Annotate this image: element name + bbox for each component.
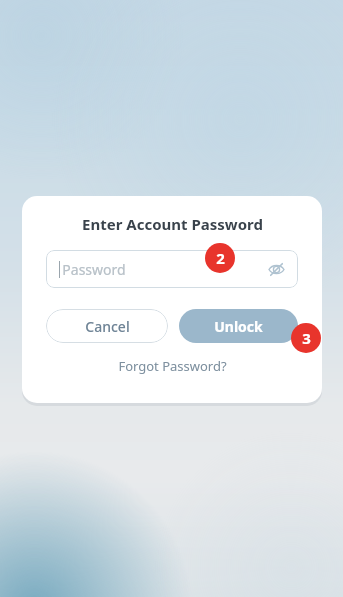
- staticText: 3: [302, 328, 311, 348]
- button[interactable]: Forgot Password?: [112, 355, 233, 377]
- staticText: Unlock: [214, 317, 263, 336]
- staticText: Forgot Password?: [118, 357, 227, 375]
- staticText: 2: [216, 248, 225, 268]
- button[interactable]: Cancel: [46, 309, 168, 343]
- button[interactable]: Show password: [264, 257, 288, 281]
- button[interactable]: Password: [46, 250, 298, 288]
- staticText: Enter Account Password: [82, 214, 263, 234]
- staticText: Password: [62, 260, 126, 279]
- button[interactable]: Unlock: [179, 309, 298, 343]
- staticText: Cancel: [85, 317, 130, 336]
